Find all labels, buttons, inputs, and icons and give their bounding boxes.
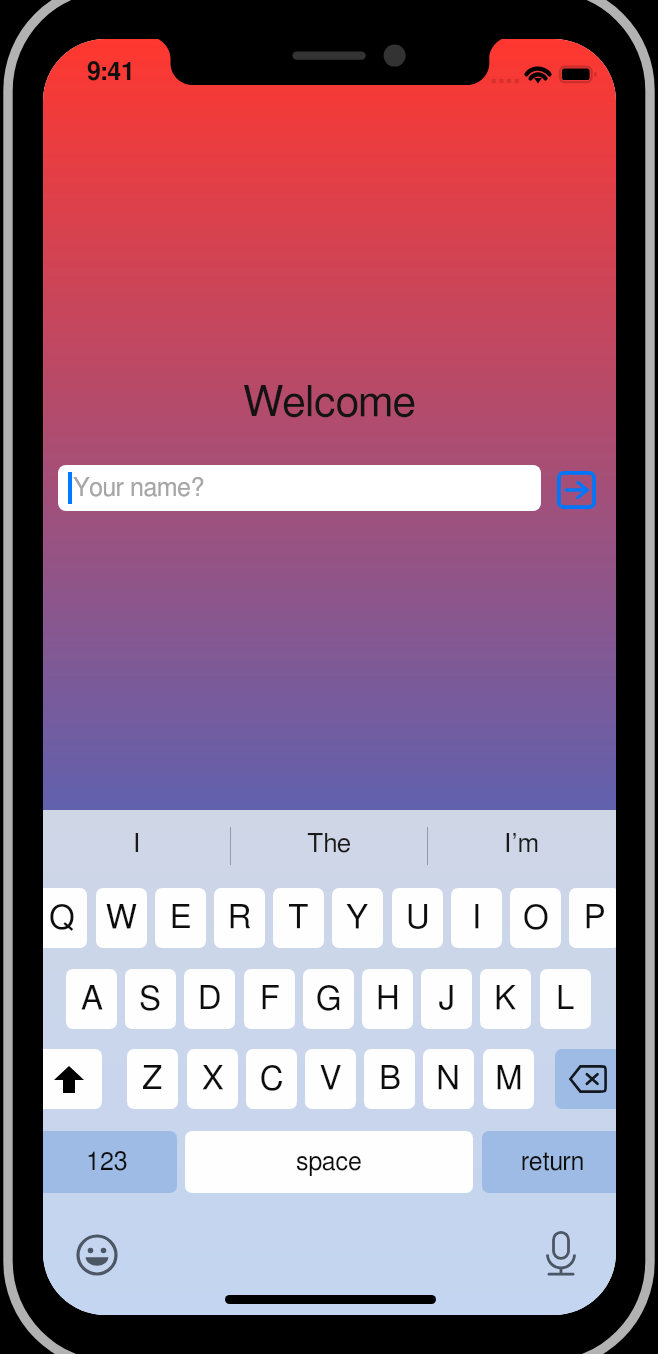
button[interactable]: D — [184, 969, 235, 1029]
staticText: H — [376, 983, 400, 1016]
button[interactable]: I’m — [427, 810, 616, 877]
button[interactable]: B — [364, 1049, 415, 1109]
staticText: G — [316, 983, 342, 1016]
staticText: T — [288, 902, 309, 935]
staticText: return — [521, 1150, 585, 1175]
button[interactable]: return — [482, 1131, 616, 1193]
staticText: Your name? — [73, 476, 205, 501]
button[interactable]: Q — [43, 888, 87, 948]
staticText: P — [584, 902, 606, 935]
button[interactable]: Z — [127, 1049, 178, 1109]
button[interactable]: K — [480, 969, 531, 1029]
button[interactable]: L — [540, 969, 591, 1029]
staticText: S — [139, 983, 162, 1016]
button[interactable]: P — [569, 888, 616, 948]
staticText: Welcome — [43, 382, 616, 425]
button[interactable]: Emoji keyboard — [76, 1234, 118, 1276]
staticText: K — [494, 983, 517, 1016]
button[interactable]: O — [510, 888, 561, 948]
button[interactable]: space — [185, 1131, 473, 1193]
staticText: W — [106, 902, 137, 935]
button[interactable]: E — [155, 888, 206, 948]
staticText: Q — [49, 902, 75, 935]
staticText: M — [495, 1063, 523, 1096]
staticText: Z — [142, 1063, 163, 1096]
staticText: L — [556, 983, 575, 1016]
button[interactable]: Y — [332, 888, 383, 948]
staticText: D — [198, 983, 222, 1016]
staticText: I — [133, 831, 141, 857]
button[interactable]: Dictation — [545, 1231, 577, 1277]
staticText: 123 — [86, 1150, 128, 1175]
staticText: I — [472, 902, 482, 935]
staticText: space — [296, 1150, 362, 1175]
button[interactable]: U — [392, 888, 443, 948]
staticText: R — [228, 902, 252, 935]
button[interactable]: V — [305, 1049, 356, 1109]
button[interactable]: W — [96, 888, 147, 948]
button[interactable]: 123 — [43, 1131, 177, 1193]
staticText: X — [202, 1063, 224, 1096]
staticText: B — [379, 1063, 401, 1096]
button[interactable]: H — [362, 969, 413, 1029]
staticText: U — [406, 902, 430, 935]
button[interactable]: F — [244, 969, 295, 1029]
button[interactable]: S — [125, 969, 176, 1029]
staticText: F — [260, 983, 280, 1016]
button[interactable]: Shift — [43, 1049, 102, 1109]
button[interactable]: T — [273, 888, 324, 948]
button[interactable]: G — [303, 969, 354, 1029]
button[interactable]: X — [187, 1049, 238, 1109]
button[interactable]: Backspace — [555, 1049, 616, 1109]
button[interactable]: Your name? — [58, 465, 541, 511]
staticText: C — [260, 1063, 284, 1096]
staticText: N — [436, 1063, 461, 1096]
button[interactable]: I — [43, 810, 230, 877]
button[interactable]: N — [423, 1049, 474, 1109]
button[interactable]: A — [66, 969, 117, 1029]
staticText: E — [170, 902, 191, 935]
button[interactable]: M — [483, 1049, 534, 1109]
button[interactable]: C — [246, 1049, 297, 1109]
button[interactable]: I — [451, 888, 502, 948]
staticText: O — [523, 902, 549, 935]
staticText: 9:41 — [87, 60, 135, 85]
staticText: A — [81, 983, 103, 1016]
staticText: V — [320, 1063, 342, 1096]
staticText: I’m — [504, 831, 539, 857]
button[interactable]: Continue — [557, 471, 596, 509]
staticText: J — [438, 983, 456, 1016]
staticText: Y — [346, 902, 369, 935]
button[interactable]: The — [230, 810, 427, 877]
button[interactable]: J — [421, 969, 472, 1029]
button[interactable]: R — [214, 888, 265, 948]
staticText: The — [307, 831, 351, 857]
